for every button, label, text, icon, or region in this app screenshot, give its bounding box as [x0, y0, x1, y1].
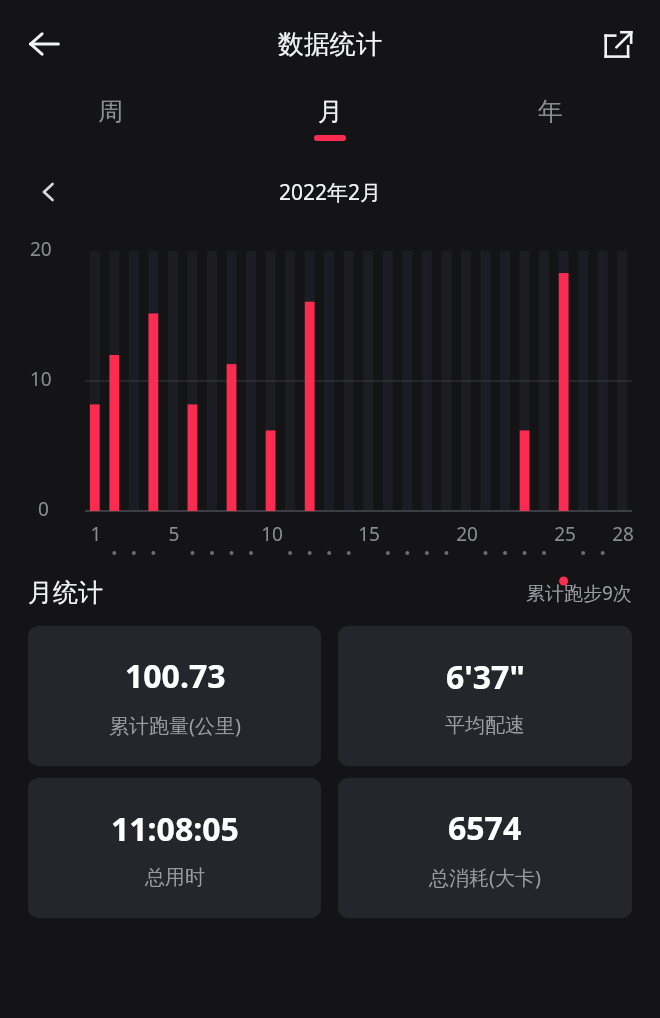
button[interactable]: Previous month: [24, 167, 74, 217]
button[interactable]: 6574: [338, 778, 632, 918]
staticText: 月统计: [28, 577, 103, 608]
staticText: 1: [84, 521, 108, 547]
staticText: 20: [455, 521, 479, 547]
staticText: 总消耗(大卡): [429, 864, 541, 891]
staticText: 0: [38, 496, 49, 522]
staticText: 25: [553, 521, 577, 547]
staticText: 平均配速: [445, 713, 525, 738]
staticText: 累计跑量(公里): [109, 712, 241, 739]
staticText: 20: [30, 236, 52, 262]
button[interactable]: 11:08:05: [28, 778, 321, 918]
button[interactable]: 100.73: [28, 626, 321, 766]
staticText: 2022年2月: [279, 178, 382, 207]
staticText: 10: [30, 366, 52, 392]
staticText: 总用时: [145, 865, 205, 890]
staticText: 6'37": [446, 655, 525, 699]
button[interactable]: Share: [590, 16, 646, 72]
staticText: 100.73: [125, 654, 226, 698]
button[interactable]: 年: [440, 88, 660, 135]
staticText: 28: [611, 521, 635, 547]
button[interactable]: 6'37": [338, 626, 632, 766]
staticText: 年: [538, 96, 563, 127]
staticText: 10: [260, 521, 284, 547]
staticText: 月: [318, 96, 343, 127]
staticText: 15: [357, 521, 381, 547]
staticText: 6574: [448, 806, 522, 850]
staticText: 周: [98, 96, 123, 127]
staticText: 11:08:05: [111, 807, 239, 851]
staticText: 5: [162, 521, 186, 547]
button[interactable]: 月: [220, 88, 440, 141]
staticText: 累计跑步9次: [526, 580, 632, 606]
button[interactable]: Back: [14, 14, 74, 74]
button[interactable]: 周: [0, 88, 220, 135]
staticText: 数据统计: [278, 28, 382, 61]
